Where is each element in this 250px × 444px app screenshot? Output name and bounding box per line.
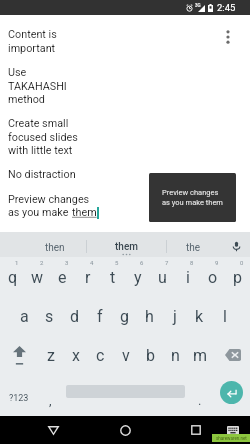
- button[interactable]: Voice input: [222, 232, 250, 257]
- button[interactable]: ?123: [2, 383, 36, 413]
- button[interactable]: h: [137, 298, 162, 335]
- button[interactable]: Home: [112, 417, 138, 443]
- staticText: the: [186, 242, 201, 254]
- button[interactable]: v: [113, 339, 138, 371]
- staticText: u: [158, 268, 167, 287]
- button[interactable]: m: [188, 339, 213, 371]
- staticText: t: [110, 268, 116, 287]
- button[interactable]: j: [162, 298, 187, 335]
- staticText: ,: [49, 393, 52, 408]
- button[interactable]: .: [188, 383, 212, 413]
- staticText: 8: [190, 259, 194, 266]
- staticText: them: [72, 206, 97, 219]
- staticText: 3: [65, 259, 69, 266]
- staticText: Create small focused slides with little …: [8, 117, 78, 156]
- staticText: c: [96, 346, 105, 365]
- staticText: i: [186, 268, 190, 287]
- staticText: q: [8, 268, 18, 287]
- staticText: 5: [115, 259, 119, 266]
- staticText: l: [223, 307, 227, 326]
- staticText: then: [45, 242, 65, 254]
- button[interactable]: a: [12, 298, 37, 335]
- staticText: z: [47, 346, 55, 365]
- staticText: 1: [15, 259, 19, 266]
- staticText: 9: [215, 259, 219, 266]
- staticText: them: [115, 241, 138, 253]
- button[interactable]: Switch keyboard: [220, 417, 246, 443]
- staticText: Use TAKAHASHI method: [8, 66, 67, 105]
- button[interactable]: w: [25, 257, 50, 294]
- staticText: e: [58, 268, 67, 287]
- staticText: 7: [165, 259, 169, 266]
- staticText: j: [173, 307, 177, 326]
- button[interactable]: u: [150, 257, 175, 294]
- button[interactable]: ,: [38, 383, 63, 413]
- staticText: o: [208, 268, 218, 287]
- staticText: 2:45: [217, 2, 236, 13]
- staticText: x: [72, 346, 80, 365]
- staticText: s: [45, 307, 54, 326]
- button[interactable]: them: [87, 232, 166, 257]
- button[interactable]: z: [38, 339, 63, 371]
- staticText: f: [97, 307, 103, 326]
- button[interactable]: n: [163, 339, 188, 371]
- button[interactable]: More options: [216, 25, 240, 49]
- button[interactable]: k: [187, 298, 212, 335]
- staticText: k: [195, 307, 204, 326]
- staticText: g: [120, 307, 129, 326]
- staticText: m: [193, 346, 208, 365]
- staticText: Preview changes as you make them: [162, 188, 223, 207]
- staticText: 3G: [195, 3, 201, 8]
- staticText: 6: [140, 259, 144, 266]
- button[interactable]: l: [212, 298, 237, 335]
- button[interactable]: the: [167, 232, 220, 257]
- staticText: as you make: [8, 206, 72, 219]
- staticText: 0: [240, 259, 244, 266]
- button[interactable]: d: [62, 298, 87, 335]
- staticText: Content is important: [8, 28, 57, 54]
- staticText: ?123: [9, 393, 29, 404]
- staticText: y: [134, 268, 142, 287]
- button[interactable]: t: [100, 257, 125, 294]
- staticText: Preview changes: [8, 193, 90, 206]
- button[interactable]: Shift: [6, 339, 32, 371]
- button[interactable]: then: [0, 232, 86, 257]
- button[interactable]: o: [200, 257, 225, 294]
- staticText: w: [31, 268, 44, 287]
- staticText: 4: [90, 259, 94, 266]
- button[interactable]: x: [63, 339, 88, 371]
- staticText: b: [146, 346, 155, 365]
- staticText: .: [198, 393, 202, 408]
- button[interactable]: Backspace: [220, 339, 246, 371]
- button[interactable]: s: [37, 298, 62, 335]
- button[interactable]: b: [138, 339, 163, 371]
- button[interactable]: r: [75, 257, 100, 294]
- staticText: h: [145, 307, 154, 326]
- staticText: sharewaren.net: [216, 436, 247, 441]
- button[interactable]: e: [50, 257, 75, 294]
- staticText: No distraction: [8, 168, 76, 181]
- button[interactable]: c: [88, 339, 113, 371]
- button[interactable]: Back: [40, 417, 66, 443]
- button[interactable]: f: [87, 298, 112, 335]
- staticText: r: [85, 268, 91, 287]
- button[interactable]: Recents: [183, 417, 209, 443]
- staticText: d: [70, 307, 80, 326]
- staticText: 2: [40, 259, 44, 266]
- button[interactable]: Enter: [220, 381, 243, 404]
- button[interactable]: y: [125, 257, 150, 294]
- staticText: a: [20, 307, 29, 326]
- button[interactable]: p: [225, 257, 250, 294]
- staticText: p: [233, 268, 242, 287]
- staticText: v: [122, 346, 130, 365]
- button[interactable]: i: [175, 257, 200, 294]
- button[interactable]: q: [0, 257, 25, 294]
- staticText: n: [171, 346, 180, 365]
- button[interactable]: g: [112, 298, 137, 335]
